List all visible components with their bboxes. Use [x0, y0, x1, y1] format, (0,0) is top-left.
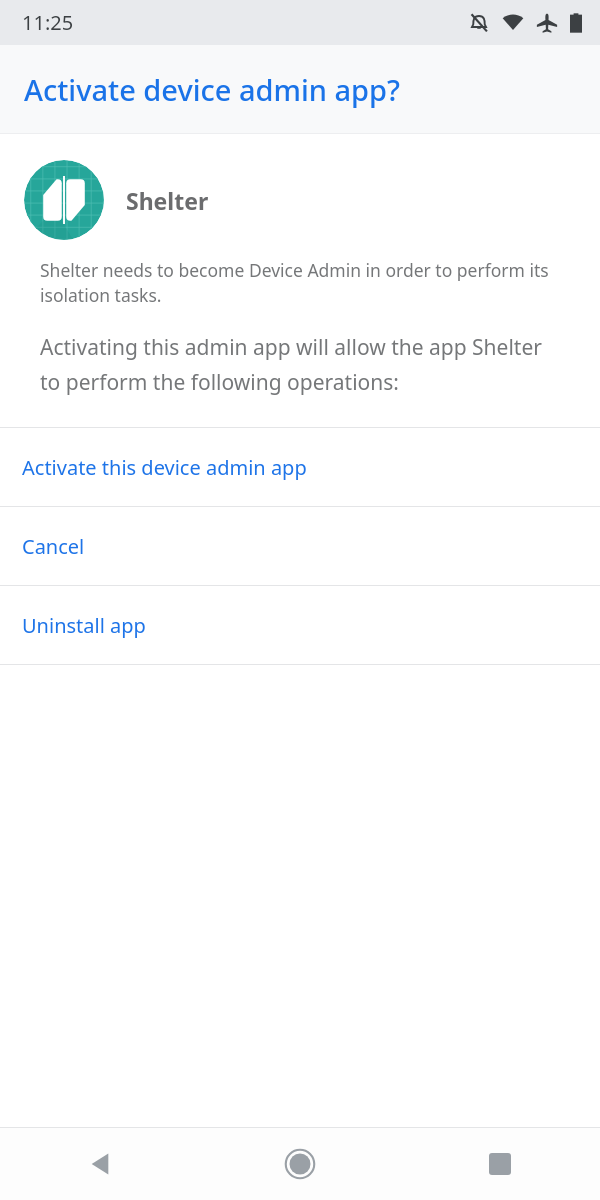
button[interactable]: Home: [200, 1128, 400, 1200]
staticText: Shelter: [126, 185, 209, 216]
button[interactable]: Uninstall app: [0, 586, 600, 664]
button[interactable]: Cancel: [0, 507, 600, 585]
staticText: Uninstall app: [22, 612, 146, 639]
staticText: 11:25: [22, 9, 74, 36]
button[interactable]: Recent apps: [400, 1128, 600, 1200]
button[interactable]: Activate this device admin app: [0, 428, 600, 506]
staticText: Shelter needs to become Device Admin in …: [40, 258, 560, 307]
staticText: Activate this device admin app: [22, 454, 307, 481]
staticText: Activating this admin app will allow the…: [40, 333, 560, 396]
staticText: Cancel: [22, 533, 85, 560]
button[interactable]: Back: [0, 1128, 200, 1200]
staticText: Activate device admin app?: [24, 70, 401, 109]
